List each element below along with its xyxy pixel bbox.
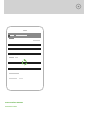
staticText: Ahorra datos moviles (5, 101, 23, 103)
button[interactable] (8, 62, 41, 64)
button[interactable]: Recycle (22, 60, 27, 65)
button[interactable]: Ahorra datos moviles (5, 101, 23, 107)
staticText: descarga la app (5, 105, 17, 107)
button[interactable]: App logo (4, 0, 84, 14)
button[interactable]: App logo (76, 4, 81, 9)
button[interactable] (8, 33, 41, 38)
